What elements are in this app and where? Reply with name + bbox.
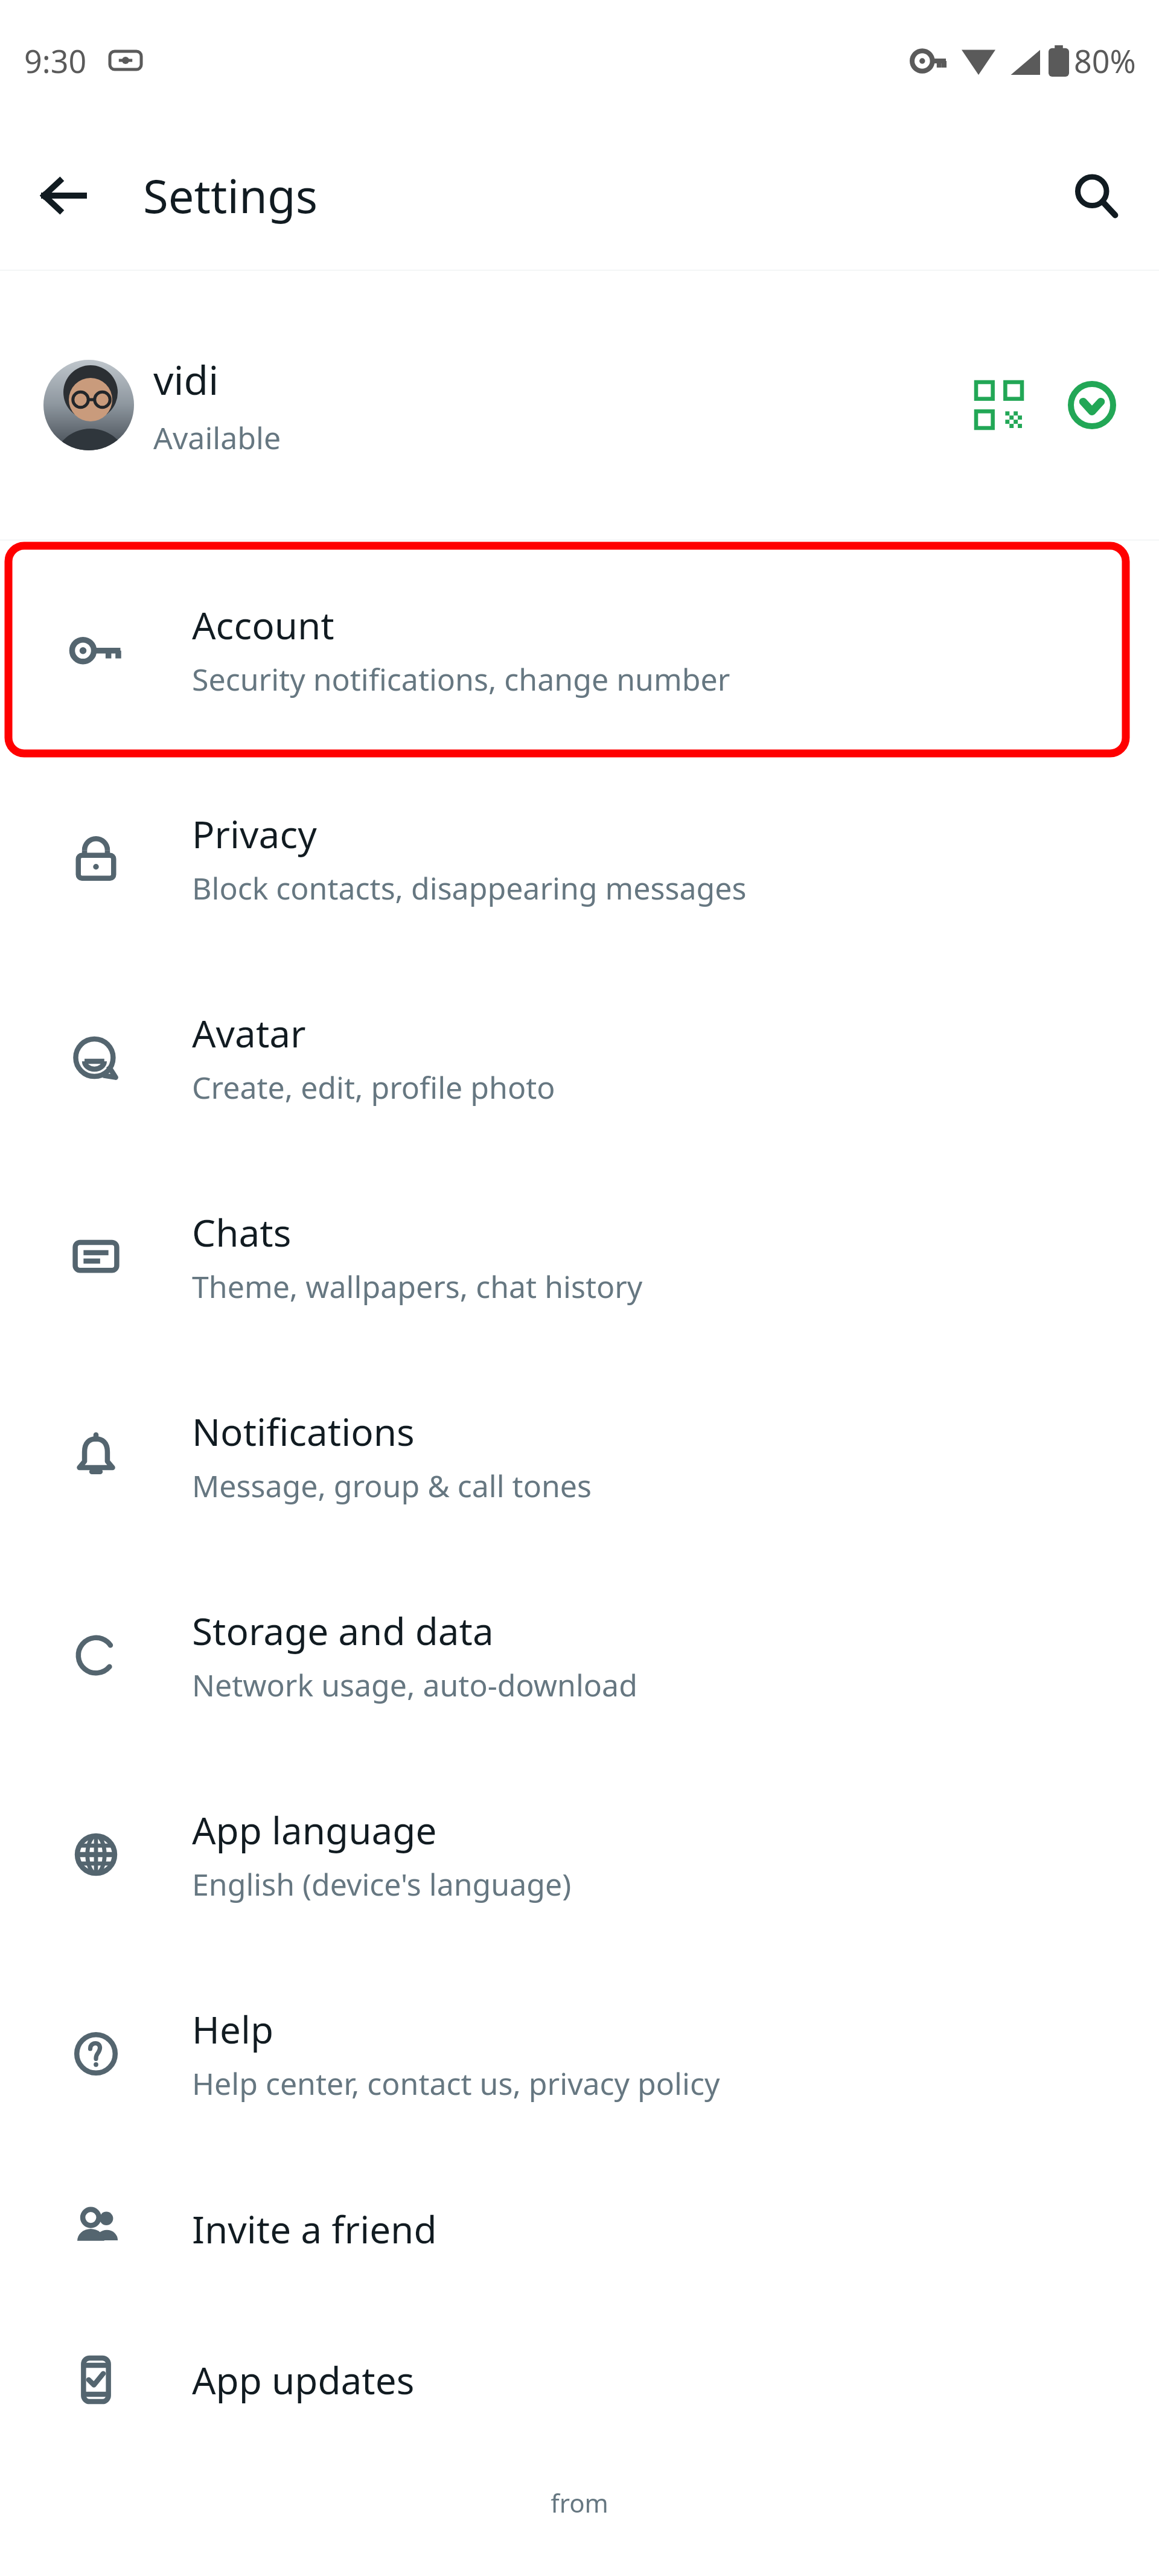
staticText: Available	[153, 417, 281, 458]
staticText: Settings	[143, 164, 318, 227]
staticText: vidi	[153, 352, 219, 406]
button[interactable]: Search	[1056, 156, 1135, 235]
staticText: App updates	[192, 2354, 415, 2405]
staticText: Privacy	[192, 808, 317, 859]
button[interactable]: Invite a friend	[0, 2153, 1159, 2304]
staticText: Account	[192, 599, 334, 650]
button[interactable]: Avatar	[0, 958, 1159, 1157]
staticText: Invite a friend	[192, 2204, 437, 2254]
button[interactable]: Privacy	[0, 759, 1159, 958]
button[interactable]: vidi	[0, 270, 1159, 540]
staticText: Notifications	[192, 1406, 415, 1457]
button[interactable]: App updates	[0, 2304, 1159, 2455]
staticText: English (device's language)	[192, 1864, 572, 1905]
staticText: Avatar	[192, 1008, 306, 1058]
staticText: 9:30	[24, 39, 87, 82]
staticText: Message, group & call tones	[192, 1465, 592, 1506]
staticText: Block contacts, disappearing messages	[192, 868, 747, 909]
staticText: Chats	[192, 1207, 292, 1258]
button[interactable]: Back	[24, 156, 103, 235]
staticText: App language	[192, 1804, 437, 1855]
staticText: Help center, contact us, privacy policy	[192, 2063, 720, 2104]
staticText: from	[0, 2485, 1159, 2520]
button[interactable]: QR code	[954, 360, 1044, 450]
button[interactable]: Chats	[0, 1157, 1159, 1357]
button[interactable]: Notifications	[0, 1357, 1159, 1556]
staticText: 80%	[1074, 39, 1136, 82]
button[interactable]: Account	[0, 540, 1159, 759]
staticText: Help	[192, 2004, 274, 2054]
staticText: Network usage, auto-download	[192, 1664, 637, 1705]
staticText: Create, edit, profile photo	[192, 1067, 555, 1108]
staticText: Security notifications, change number	[192, 659, 730, 700]
staticText: Storage and data	[192, 1605, 494, 1656]
button[interactable]: Storage and data	[0, 1556, 1159, 1755]
staticText: Theme, wallpapers, chat history	[192, 1266, 643, 1307]
button[interactable]: App language	[0, 1755, 1159, 1954]
button[interactable]: Expand status	[1047, 360, 1137, 450]
button[interactable]: Help	[0, 1954, 1159, 2153]
